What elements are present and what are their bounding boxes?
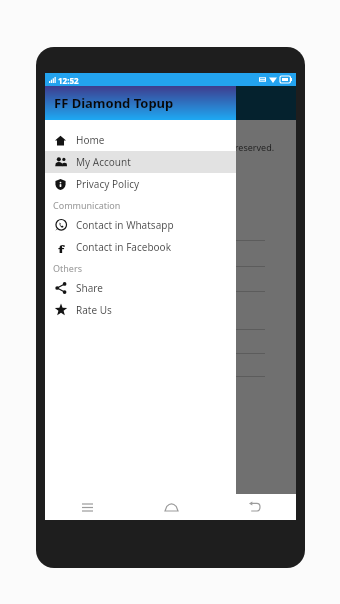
staticText: All rights reserved. [195, 141, 275, 153]
staticText: Privacy Policy [76, 177, 140, 191]
button[interactable]: Home [45, 129, 236, 151]
staticText: 12:52 [58, 75, 79, 86]
staticText: Contact in Facebook [76, 240, 171, 254]
button[interactable]: Privacy Policy [45, 173, 236, 195]
staticText: Others [53, 262, 82, 274]
button[interactable]: Rate Us [45, 299, 236, 321]
button[interactable]: f [45, 236, 236, 258]
button[interactable]: Share [45, 277, 236, 299]
staticText: My Account [76, 155, 131, 169]
button[interactable]: Home [157, 494, 185, 520]
button[interactable]: Contact in Whatsapp [45, 214, 236, 236]
staticText: Rate Us [76, 303, 112, 317]
button[interactable]: Back [240, 494, 268, 520]
button[interactable]: My Account [45, 151, 236, 173]
staticText: Communication [53, 199, 121, 211]
staticText: Share [76, 281, 103, 295]
staticText: Home [76, 133, 105, 147]
staticText: FF Diamond Topup [54, 94, 174, 112]
staticText: f [58, 241, 65, 253]
button[interactable]: Recent apps [73, 494, 101, 520]
staticText: Contact in Whatsapp [76, 218, 174, 232]
